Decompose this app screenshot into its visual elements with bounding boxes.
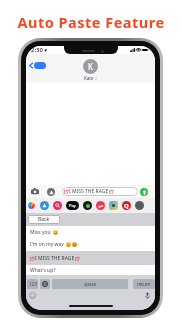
button[interactable]: App Store	[47, 188, 55, 196]
button[interactable]: I'm on my way	[26, 238, 155, 251]
button[interactable]: Apple Pay	[66, 201, 79, 210]
button[interactable]: Back	[28, 215, 60, 224]
button[interactable]: Camera	[31, 188, 39, 195]
button[interactable]: Send	[140, 188, 148, 196]
staticText: 123	[29, 281, 37, 287]
staticText: Miss you	[30, 229, 51, 236]
staticText: 2:30	[31, 46, 43, 54]
button[interactable]: I MISS THE RAGE	[26, 251, 155, 265]
button[interactable]: App	[109, 201, 118, 210]
staticText: Pay	[69, 203, 76, 208]
button[interactable]: 123	[27, 279, 38, 289]
staticText: Auto Paste Feature	[17, 12, 165, 32]
button[interactable]: Back	[29, 62, 46, 69]
staticText: K	[88, 61, 93, 72]
button[interactable]: App	[135, 201, 144, 210]
staticText: Q	[124, 202, 129, 210]
button[interactable]: Miss you	[26, 226, 155, 238]
button[interactable]: space	[52, 279, 128, 289]
staticText: space	[84, 281, 97, 287]
staticText: I'm on my way	[30, 241, 64, 248]
button[interactable]: return	[133, 279, 155, 289]
button[interactable]: App	[53, 201, 62, 210]
staticText: Back	[38, 216, 50, 223]
button[interactable]: Photos	[27, 201, 36, 210]
button[interactable]: Emoji	[29, 292, 36, 299]
button[interactable]: Microphone	[145, 292, 150, 299]
button[interactable]: App	[122, 201, 131, 210]
button[interactable]: What's up?	[26, 265, 155, 275]
staticText: Kate	[84, 75, 94, 81]
staticText: return	[137, 281, 151, 287]
staticText: What's up?	[30, 267, 56, 274]
staticText: I MISS THE RAGE	[35, 255, 75, 262]
button[interactable]: Language	[40, 279, 50, 289]
staticText: I MISS THE RAGE	[69, 188, 109, 195]
button[interactable]: App	[40, 201, 49, 210]
button[interactable]: App	[96, 201, 105, 210]
button[interactable]: App	[83, 201, 92, 210]
